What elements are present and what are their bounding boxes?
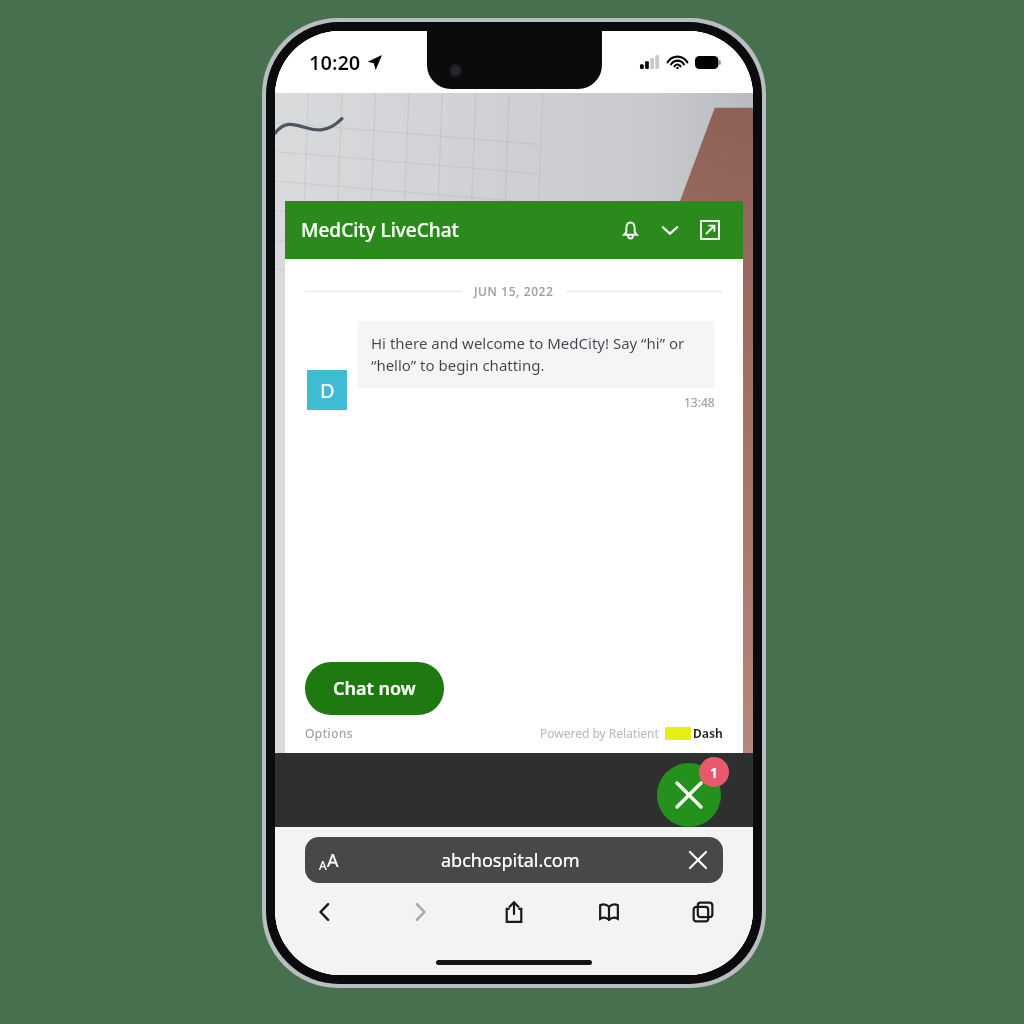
button[interactable]: Minimize chat: [653, 213, 687, 247]
button[interactable]: Back: [303, 890, 347, 934]
button[interactable]: Notifications: [613, 213, 647, 247]
button[interactable]: Chat now: [305, 662, 444, 715]
staticText: abchospital.com: [441, 848, 580, 873]
button[interactable]: Share: [492, 890, 536, 934]
staticText: JUN 15, 2022: [474, 283, 554, 299]
button[interactable]: Stop loading: [683, 845, 713, 875]
button[interactable]: Bookmarks: [587, 890, 631, 934]
staticText: Chat now: [333, 676, 416, 701]
button[interactable]: Tabs: [681, 890, 725, 934]
staticText: 1: [710, 763, 719, 782]
button[interactable]: A: [305, 837, 723, 883]
staticText: A: [319, 857, 327, 873]
staticText: Dash: [693, 725, 723, 741]
staticText: Hi there and welcome to MedCity! Say “hi…: [371, 333, 701, 376]
staticText: 13:48: [684, 394, 715, 410]
staticText: Options: [305, 725, 354, 741]
staticText: A: [327, 848, 339, 873]
button[interactable]: Forward: [398, 890, 442, 934]
staticText: 10:20: [309, 49, 361, 76]
button[interactable]: Close chat: [657, 763, 721, 827]
staticText: MedCity LiveChat: [301, 217, 459, 243]
button[interactable]: Options: [305, 725, 354, 741]
staticText: D: [320, 377, 335, 404]
button[interactable]: Open in new window: [693, 213, 727, 247]
staticText: Powered by Relatient: [540, 725, 659, 741]
